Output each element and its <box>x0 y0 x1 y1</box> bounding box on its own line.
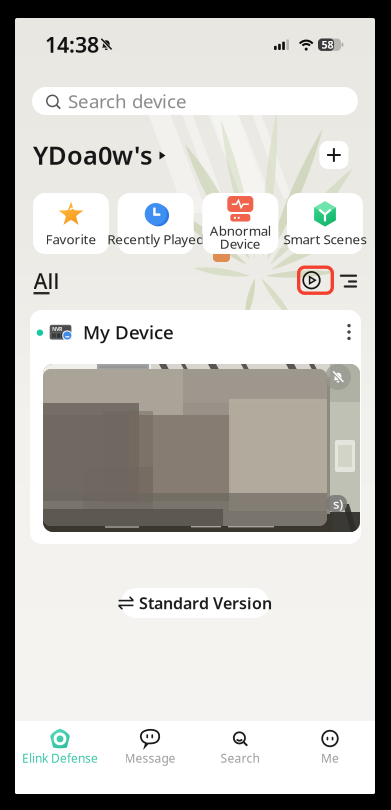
staticText: YDoa0w's <box>33 138 152 172</box>
button[interactable]: All <box>33 270 79 296</box>
button[interactable]: s) <box>43 364 360 532</box>
button[interactable]: Message <box>105 721 195 767</box>
staticText: Smart Scenes <box>283 230 366 248</box>
staticText: Favorite <box>45 230 96 248</box>
staticText: All <box>33 267 59 295</box>
staticText: Recently Played <box>107 230 204 248</box>
staticText: Device <box>220 235 261 252</box>
button[interactable]: Recently Played <box>118 193 194 254</box>
button[interactable]: Favorite <box>33 193 109 254</box>
staticText: Standard Version <box>139 592 272 614</box>
button[interactable]: Abnormal <box>202 193 278 254</box>
button[interactable]: Standard Version <box>121 588 269 618</box>
staticText: Me <box>321 750 339 766</box>
button[interactable]: Me <box>285 721 375 767</box>
button[interactable]: Search device <box>32 87 358 115</box>
staticText: Elink Defense <box>22 750 98 766</box>
button[interactable]: Search <box>195 721 285 767</box>
staticText: My Device <box>83 320 174 344</box>
button[interactable] <box>297 265 334 295</box>
button[interactable] <box>340 320 358 344</box>
staticText: Abnormal <box>210 222 271 239</box>
staticText: s) <box>333 495 343 512</box>
staticText: Message <box>124 750 175 766</box>
button[interactable]: NVR <box>33 318 218 346</box>
button[interactable]: Elink Defense <box>15 721 105 767</box>
staticText: NVR <box>52 325 62 332</box>
button[interactable] <box>319 141 348 169</box>
staticText: 14:38 <box>45 30 99 59</box>
button[interactable] <box>340 274 357 288</box>
staticText: 58 <box>321 38 333 52</box>
staticText: Search device <box>68 89 187 113</box>
button[interactable]: Smart Scenes <box>287 193 363 254</box>
button[interactable] <box>159 151 166 160</box>
staticText: Search <box>220 750 259 766</box>
